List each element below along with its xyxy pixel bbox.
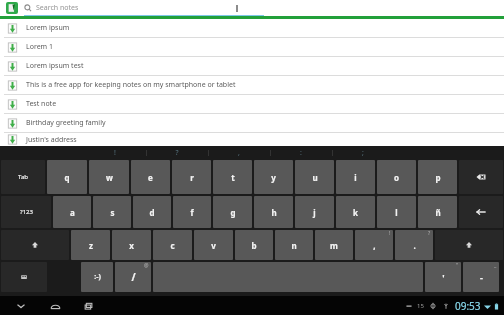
staticText: m (330, 240, 338, 251)
staticText: ! (389, 230, 391, 237)
button[interactable]: k (336, 196, 375, 228)
staticText: : (300, 148, 302, 158)
button[interactable]: m (315, 230, 353, 260)
button[interactable]: c (153, 230, 192, 260)
button[interactable]: Test note (0, 95, 504, 113)
button[interactable]: b (235, 230, 273, 260)
button[interactable]: v (194, 230, 233, 260)
button[interactable]: x (112, 230, 151, 260)
staticText: Justin's address (26, 135, 77, 145)
button[interactable]: Shift (1, 230, 69, 260)
button[interactable]: o (377, 160, 416, 194)
button[interactable]: Birthday greeting family (0, 114, 504, 132)
staticText: z (89, 240, 93, 251)
button[interactable]: a (53, 196, 91, 228)
button[interactable]: / (115, 262, 151, 292)
staticText: n (291, 240, 297, 251)
staticText: ñ (435, 207, 441, 218)
button[interactable]: Lorem 1 (0, 38, 504, 56)
button[interactable]: Hide keyboard (10, 298, 32, 314)
button[interactable]: ñ (418, 196, 457, 228)
staticText: ?123 (20, 208, 33, 216)
button[interactable]: j (295, 196, 334, 228)
staticText: " (456, 262, 459, 269)
button[interactable]: l (377, 196, 416, 228)
button[interactable]: - (463, 262, 499, 292)
button[interactable]: e (131, 160, 170, 194)
button[interactable]: t (213, 160, 252, 194)
staticText: o (394, 172, 399, 183)
staticText: This is a free app for keeping notes on … (26, 80, 236, 90)
button[interactable]: Search notes (24, 3, 492, 13)
staticText: b (251, 240, 257, 251)
button[interactable]: Justin's address (0, 133, 504, 146)
staticText: ! (114, 148, 116, 158)
staticText: , (373, 240, 376, 251)
staticText: ? (175, 148, 179, 158)
button[interactable]: q (47, 160, 87, 194)
button[interactable]: Lorem ipsum (0, 19, 504, 37)
button[interactable]: :-) (81, 262, 113, 292)
button[interactable]: . (395, 230, 433, 260)
button[interactable]: g (213, 196, 252, 228)
button[interactable]: Home (44, 298, 66, 314)
staticText: @ (144, 262, 149, 269)
button[interactable]: p (418, 160, 457, 194)
button[interactable]: Switch keyboard (1, 262, 47, 292)
button[interactable]: ; (332, 146, 394, 159)
button[interactable]: r (172, 160, 211, 194)
button[interactable]: Notes app (6, 2, 18, 14)
staticText: Search notes (36, 3, 79, 13)
button[interactable]: Lorem ipsum test (0, 57, 504, 75)
button[interactable]: s (93, 196, 131, 228)
button[interactable]: , (208, 146, 270, 159)
button[interactable]: u (295, 160, 334, 194)
button[interactable]: ? (146, 146, 208, 159)
button[interactable]: ' (425, 262, 461, 292)
staticText: l (395, 207, 398, 218)
staticText: / (131, 270, 136, 284)
staticText: 09:53 (455, 299, 481, 313)
button[interactable]: Backspace (459, 160, 503, 194)
button[interactable]: z (71, 230, 110, 260)
button[interactable]: w (89, 160, 129, 194)
staticText: a (70, 207, 75, 218)
button[interactable]: y (254, 160, 293, 194)
button[interactable]: Recent apps (78, 298, 100, 314)
staticText: y (271, 172, 276, 183)
button[interactable]: h (254, 196, 293, 228)
staticText: Tab (18, 173, 28, 181)
button[interactable]: Tab (1, 160, 45, 194)
staticText: 15 (417, 302, 424, 310)
staticText: g (230, 207, 236, 218)
staticText: Lorem 1 (26, 42, 53, 52)
staticText: _ (494, 262, 497, 269)
button[interactable]: d (133, 196, 171, 228)
staticText: w (106, 172, 113, 183)
staticText: r (190, 172, 194, 183)
button[interactable]: : (270, 146, 332, 159)
button[interactable]: This is a free app for keeping notes on … (0, 76, 504, 94)
staticText: Lorem ipsum (26, 23, 70, 33)
staticText: Birthday greeting family (26, 118, 106, 128)
staticText: ; (362, 148, 364, 158)
staticText: c (170, 240, 175, 251)
staticText: Test note (26, 99, 57, 109)
button[interactable]: Shift (435, 230, 503, 260)
staticText: t (231, 172, 235, 183)
staticText: . (413, 240, 416, 251)
button[interactable]: ! (84, 146, 146, 159)
staticText: k (353, 207, 358, 218)
staticText: ? (428, 230, 431, 237)
button[interactable]: i (336, 160, 375, 194)
staticText: e (148, 172, 153, 183)
button[interactable]: ?123 (1, 196, 51, 228)
staticText: ' (442, 271, 445, 283)
button[interactable]: Enter (459, 196, 503, 228)
staticText: , (238, 148, 240, 158)
button[interactable]: n (275, 230, 313, 260)
staticText: u (312, 172, 318, 183)
button[interactable]: f (173, 196, 211, 228)
button[interactable]: , (355, 230, 393, 260)
